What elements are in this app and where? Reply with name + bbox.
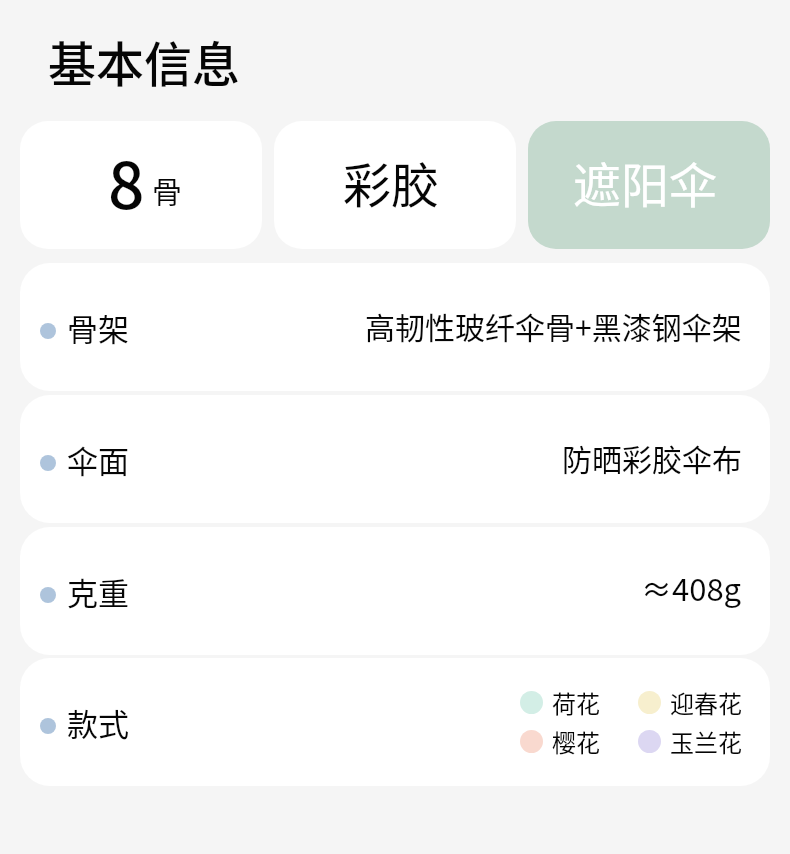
button[interactable]: 骨架 <box>20 263 770 391</box>
staticText: 玉兰花 <box>670 724 742 759</box>
staticText: 伞面 <box>67 437 129 482</box>
staticText: 防晒彩胶伞布 <box>562 436 742 479</box>
staticText: 款式 <box>67 700 129 745</box>
staticText: ≈408g <box>641 565 742 610</box>
staticText: 遮阳伞 <box>573 147 718 217</box>
staticText: 迎春花 <box>670 685 742 720</box>
staticText: 克重 <box>67 569 129 614</box>
staticText: 彩胶 <box>343 147 440 217</box>
button[interactable]: 彩胶 <box>274 121 516 249</box>
button[interactable]: 款式 <box>20 658 770 786</box>
staticText: 荷花 <box>552 685 600 720</box>
button[interactable]: 伞面 <box>20 395 770 523</box>
button[interactable]: 遮阳伞 <box>528 121 770 249</box>
staticText: 骨 <box>152 168 182 211</box>
staticText: 骨架 <box>67 305 129 350</box>
button[interactable]: 克重 <box>20 527 770 655</box>
staticText: 8 <box>108 135 145 228</box>
staticText: 樱花 <box>552 724 600 759</box>
button[interactable]: 玉兰花 <box>638 724 742 759</box>
staticText: 基本信息 <box>48 26 241 96</box>
staticText: 高韧性玻纤伞骨+黑漆钢伞架 <box>365 304 742 347</box>
button[interactable]: 樱花 <box>520 724 638 759</box>
button[interactable]: 迎春花 <box>638 685 742 720</box>
button[interactable]: 荷花 <box>520 685 638 720</box>
button[interactable]: 8 <box>20 121 262 249</box>
